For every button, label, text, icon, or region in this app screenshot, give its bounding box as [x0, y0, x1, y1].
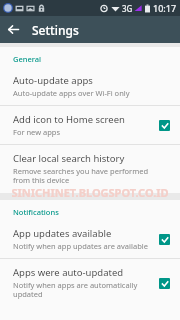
- staticText: Add icon to Home screen: [13, 113, 125, 126]
- staticText: Remove searches you have performed from …: [13, 166, 167, 186]
- staticText: 3G: [122, 3, 133, 14]
- staticText: For new apps: [13, 127, 61, 137]
- staticText: General: [13, 54, 42, 64]
- button[interactable]: Back: [0, 16, 27, 43]
- staticText: Auto-update apps: [13, 74, 93, 87]
- button[interactable]: Auto-update apps: [0, 67, 180, 105]
- staticText: Notifications: [13, 207, 59, 217]
- button[interactable]: Apps were auto-updated: [0, 259, 180, 307]
- button[interactable]: Add icon to Home screen: [0, 106, 180, 144]
- staticText: SINICHINET.BLOGSPOT.CO.ID: [11, 185, 169, 200]
- button[interactable]: Add icon to Home screen checkbox: [155, 116, 173, 134]
- staticText: Clear local search history: [13, 152, 125, 165]
- staticText: Notify when app updates are available: [13, 241, 148, 251]
- staticText: Settings: [32, 22, 79, 38]
- staticText: App updates available: [13, 227, 112, 240]
- staticText: Notify when apps are automatically updat…: [13, 280, 149, 300]
- button[interactable]: Clear local search history: [0, 145, 180, 193]
- button[interactable]: App updates available: [0, 220, 180, 258]
- staticText: 10:17: [153, 2, 177, 14]
- button[interactable]: App updates available checkbox: [155, 230, 173, 248]
- staticText: Apps were auto-updated: [13, 266, 124, 279]
- staticText: Auto-update apps over Wi-Fi only: [13, 88, 130, 98]
- button[interactable]: Apps were auto-updated checkbox: [155, 274, 173, 292]
